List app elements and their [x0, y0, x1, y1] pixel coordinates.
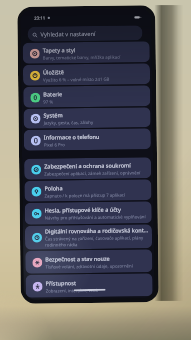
- button[interactable]: Baterie: [23, 85, 150, 108]
- staticText: Čas strávený na zařízení, časovače aplik…: [45, 234, 144, 241]
- staticText: Baterie: [43, 90, 62, 97]
- button[interactable]: Tapety a styl: [23, 41, 150, 64]
- staticText: Vyhledat v nastavení: [40, 30, 96, 39]
- button[interactable]: Digitální rovnováha a rodičovská kontrol…: [25, 224, 152, 250]
- staticText: Tapety a styl: [43, 46, 76, 53]
- staticText: Informace o telefonu: [44, 133, 100, 141]
- button[interactable]: Informace o telefonu: [24, 128, 151, 151]
- button[interactable]: Systém: [23, 107, 151, 129]
- button[interactable]: Hesla, přístupové klíče a účty: [25, 201, 152, 225]
- staticText: rodinného rádia: [45, 241, 78, 247]
- staticText: Systém: [43, 111, 64, 118]
- staticText: Využito 6 % – volné místo 241 GB: [43, 76, 110, 82]
- staticText: Jazyky, gesta, čas, zálohy: [44, 119, 94, 125]
- button[interactable]: Úložiště: [23, 63, 150, 86]
- button[interactable]: Poloha: [24, 179, 151, 202]
- staticText: Návrhy pro přihlašování a automatické vy…: [45, 213, 146, 220]
- staticText: Barvy, tematické barvy, mřížka aplikací: [43, 54, 121, 61]
- staticText: Zapnuto / k poloze má přístup 7 aplikací: [44, 191, 126, 198]
- button[interactable]: Zabezpečení a ochrana soukromí: [24, 157, 151, 180]
- staticText: Poloha: [44, 184, 63, 191]
- button[interactable]: Vyhledat v nastavení: [27, 25, 143, 42]
- staticText: Úložiště: [43, 68, 64, 76]
- button[interactable]: Přístupnost: [25, 273, 153, 298]
- button[interactable]: Bezpečnost a stav nouze: [25, 249, 152, 274]
- staticText: Hesla, přístupové klíče a účty: [45, 206, 122, 213]
- staticText: Zabezpečení a ochrana soukromí: [44, 161, 131, 170]
- staticText: Bezpečnost a stav nouze: [45, 255, 110, 262]
- staticText: 23:11: [34, 15, 45, 22]
- staticText: Tísňové volání, zdravotní údaje, upozorn…: [45, 262, 133, 270]
- staticText: Přístupnost: [45, 279, 77, 286]
- staticText: Pixel 6 Pro: [44, 141, 66, 148]
- staticText: Zobrazení, interakce, zvuk: [46, 287, 99, 293]
- staticText: Zabezpečení aplikací, zámek zařízení, op…: [44, 169, 141, 177]
- staticText: Digitální rovnováha a rodičovská kontrol…: [45, 226, 149, 235]
- staticText: 97 %: [43, 98, 53, 104]
